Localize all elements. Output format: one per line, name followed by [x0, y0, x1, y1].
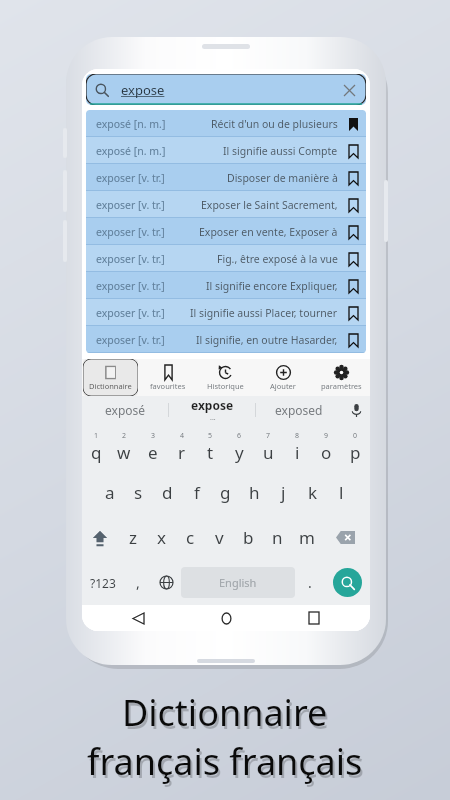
button[interactable]: Bookmark	[344, 223, 362, 241]
button[interactable]: exposer [v. tr.]	[86, 191, 366, 218]
button[interactable]: l	[327, 470, 356, 515]
button[interactable]: exposer [v. tr.]	[86, 326, 366, 353]
button[interactable]: ?123	[82, 560, 124, 605]
button[interactable]: exposé [n. m.]	[86, 110, 366, 137]
button[interactable]: paramètres	[313, 359, 369, 396]
staticText: Dictionnaire	[122, 688, 328, 737]
staticText: exposer [v. tr.]	[96, 171, 165, 185]
button[interactable]: n	[263, 515, 292, 560]
button[interactable]: 4	[167, 424, 196, 470]
button[interactable]: Bookmark	[344, 250, 362, 268]
staticText: q	[91, 441, 102, 464]
other: Search	[95, 83, 109, 97]
button[interactable]: k	[298, 470, 327, 515]
staticText: y	[235, 441, 244, 464]
button[interactable]: exposé	[82, 396, 168, 424]
button[interactable]: Bookmark	[344, 277, 362, 295]
button[interactable]: Bookmark	[344, 142, 362, 160]
button[interactable]: Bookmark	[344, 169, 362, 187]
button[interactable]: s	[124, 470, 153, 515]
button[interactable]: Recents	[297, 605, 331, 631]
button[interactable]: x	[147, 515, 176, 560]
button[interactable]: m	[292, 515, 321, 560]
staticText: p	[350, 441, 361, 464]
staticText: g	[220, 481, 231, 504]
button[interactable]: g	[211, 470, 240, 515]
staticText: 7	[266, 431, 271, 441]
button[interactable]: Historique	[197, 359, 253, 396]
button[interactable]: exposer [v. tr.]	[86, 218, 366, 245]
button[interactable]: favourites	[140, 359, 195, 396]
button[interactable]: expose	[169, 396, 255, 424]
button[interactable]: Bookmark	[344, 196, 362, 214]
staticText: expose	[121, 81, 165, 99]
button[interactable]: Search	[333, 568, 362, 597]
staticText: Il signifie encore Expliquer,	[206, 279, 338, 293]
button[interactable]: Ajouter	[255, 359, 311, 396]
button[interactable]: Bookmark	[344, 331, 362, 349]
button[interactable]: 9	[312, 424, 341, 470]
staticText: k	[308, 481, 318, 504]
staticText: 0	[353, 431, 358, 441]
button[interactable]: Back	[121, 605, 155, 631]
button[interactable]: j	[269, 470, 298, 515]
staticText: c	[186, 526, 195, 549]
staticText: Il signifie, en outre Hasarder,	[196, 333, 338, 347]
staticText: w	[117, 441, 131, 464]
staticText: exposé [n. m.]	[96, 144, 166, 158]
staticText: exposer [v. tr.]	[96, 306, 165, 320]
button[interactable]: Home	[209, 605, 243, 631]
staticText: Il signifie aussi Placer, tourner	[190, 306, 338, 320]
staticText: j	[281, 481, 286, 504]
staticText: 8	[295, 431, 300, 441]
staticText: l	[339, 481, 344, 504]
button[interactable]: v	[205, 515, 234, 560]
button[interactable]: ,	[124, 560, 152, 605]
button[interactable]: Search	[86, 74, 366, 105]
button[interactable]: exposed	[256, 396, 342, 424]
button[interactable]: exposer [v. tr.]	[86, 164, 366, 191]
button[interactable]: a	[95, 470, 124, 515]
button[interactable]: 8	[283, 424, 312, 470]
button[interactable]: Bookmark	[344, 115, 362, 133]
staticText: ...	[210, 413, 216, 423]
staticText: a	[105, 481, 115, 504]
staticText: 5	[208, 431, 213, 441]
button[interactable]: f	[182, 470, 211, 515]
button[interactable]: exposé [n. m.]	[86, 137, 366, 164]
button[interactable]: exposer [v. tr.]	[86, 299, 366, 326]
button[interactable]: Voice input	[342, 396, 370, 424]
button[interactable]: 0	[341, 424, 370, 470]
button[interactable]: b	[234, 515, 263, 560]
button[interactable]: c	[176, 515, 205, 560]
staticText: .	[308, 573, 312, 592]
button[interactable]: 1	[82, 424, 110, 470]
staticText: e	[148, 441, 158, 464]
button[interactable]: .	[295, 560, 324, 605]
button[interactable]: h	[240, 470, 269, 515]
staticText: h	[249, 481, 260, 504]
button[interactable]: exposer [v. tr.]	[86, 272, 366, 299]
button[interactable]: 5	[196, 424, 225, 470]
button[interactable]: exposer [v. tr.]	[86, 245, 366, 272]
staticText: o	[321, 441, 332, 464]
staticText: Récit d'un ou de plusieurs	[211, 117, 338, 131]
button[interactable]: Dictionnaire	[83, 359, 138, 396]
button[interactable]: 6	[225, 424, 254, 470]
button[interactable]: 7	[254, 424, 283, 470]
button[interactable]: 2	[110, 424, 138, 470]
button[interactable]: Bookmark	[344, 304, 362, 322]
button[interactable]: 3	[138, 424, 167, 470]
button[interactable]: d	[153, 470, 182, 515]
button[interactable]: Shift	[82, 515, 118, 560]
staticText: favourites	[150, 381, 186, 391]
button[interactable]: z	[118, 515, 147, 560]
staticText: i	[295, 441, 300, 464]
button[interactable]: English	[181, 567, 295, 598]
staticText: 9	[324, 431, 329, 441]
staticText: Disposer de manière à	[227, 171, 338, 185]
button[interactable]: Backspace	[321, 515, 370, 560]
button[interactable]: Change language	[152, 560, 181, 605]
button[interactable]: Clear	[337, 78, 361, 102]
staticText: exposer [v. tr.]	[96, 333, 165, 347]
